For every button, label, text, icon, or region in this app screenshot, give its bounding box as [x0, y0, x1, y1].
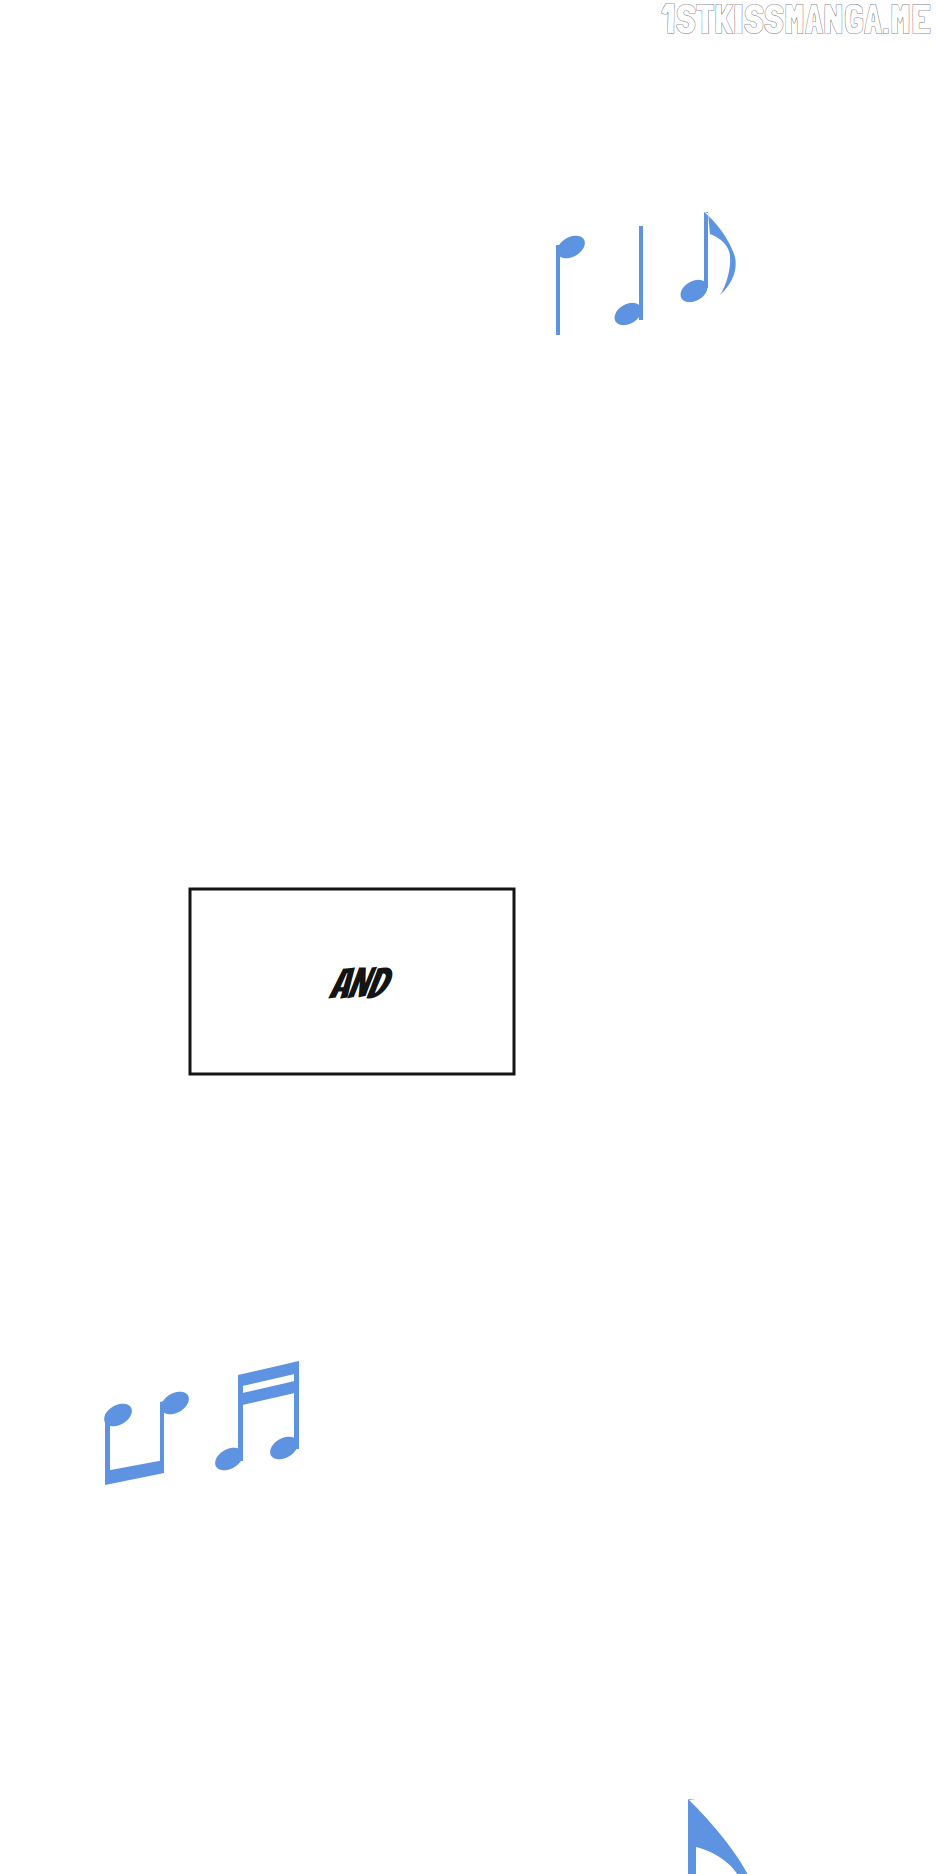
staticText: 1STKISSMANGA.ME	[661, 0, 931, 44]
button[interactable]: AND	[0, 0, 940, 1874]
staticText: AND	[329, 961, 385, 1006]
